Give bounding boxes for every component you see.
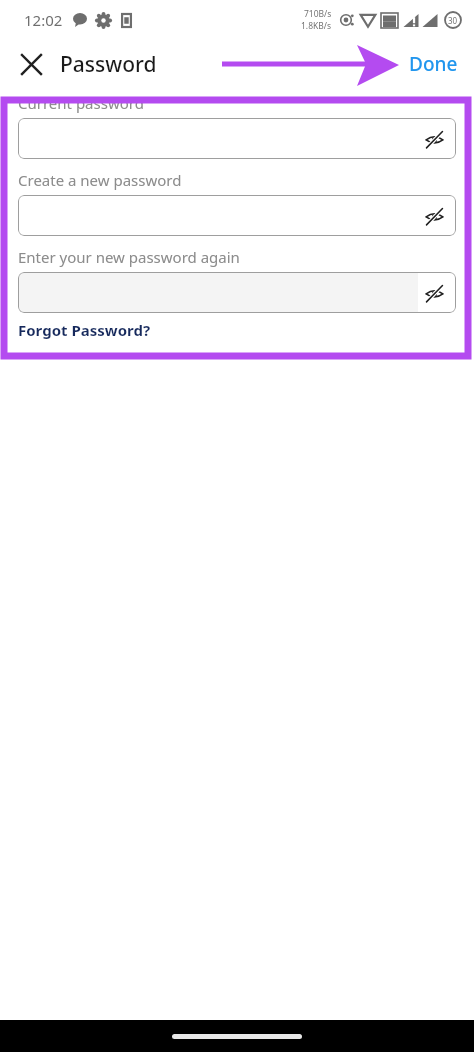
staticText: Forgot Password? [18,320,151,340]
staticText: 12:02 [24,10,63,30]
staticText: Enter your new password again [18,247,240,267]
button[interactable]: Show password [18,118,456,159]
button[interactable]: Show password [18,272,456,313]
button[interactable]: Close [14,47,48,81]
staticText: Password [60,50,157,79]
button[interactable]: Show password [419,201,449,231]
button[interactable]: Show password [18,195,456,236]
staticText: Create a new password [18,170,182,190]
button[interactable]: Done [403,45,464,83]
staticText: Done [409,51,458,77]
button[interactable]: Forgot Password? [18,318,151,342]
button[interactable]: Show password [419,124,449,154]
staticText: 710B/s [304,8,332,20]
staticText: Current password [18,93,144,113]
staticText: 1.8KB/s [301,20,332,32]
button[interactable]: Show password [419,278,449,308]
staticText: 30 [448,15,458,26]
